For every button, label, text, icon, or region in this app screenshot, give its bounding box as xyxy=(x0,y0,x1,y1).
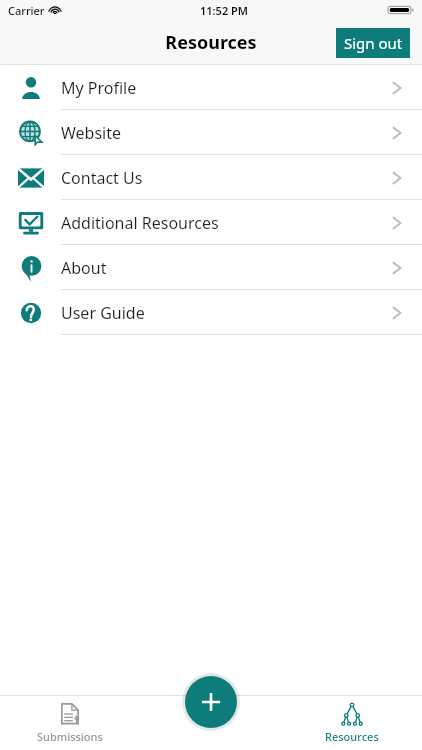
staticText: Resources xyxy=(165,30,257,55)
button[interactable]: My Profile xyxy=(0,65,422,110)
staticText: About xyxy=(61,257,107,279)
staticText: Submissions xyxy=(37,729,103,744)
button[interactable]: Website xyxy=(0,110,422,155)
button[interactable]: Submissions xyxy=(27,698,113,748)
staticText: 11:52 PM xyxy=(200,3,249,18)
staticText: Carrier xyxy=(8,3,45,18)
staticText: My Profile xyxy=(61,77,137,99)
staticText: Additional Resources xyxy=(61,212,219,234)
button[interactable]: Add xyxy=(185,676,237,728)
staticText: Sign out xyxy=(344,33,403,53)
staticText: User Guide xyxy=(61,302,145,324)
staticText: Contact Us xyxy=(61,167,143,189)
button[interactable]: Sign out xyxy=(336,28,410,58)
staticText: Website xyxy=(61,122,122,144)
button[interactable]: Additional Resources xyxy=(0,200,422,245)
button[interactable]: User Guide xyxy=(0,290,422,335)
button[interactable]: Contact Us xyxy=(0,155,422,200)
button[interactable]: About xyxy=(0,245,422,290)
staticText: Resources xyxy=(325,729,379,744)
button[interactable]: Resources xyxy=(315,698,389,748)
